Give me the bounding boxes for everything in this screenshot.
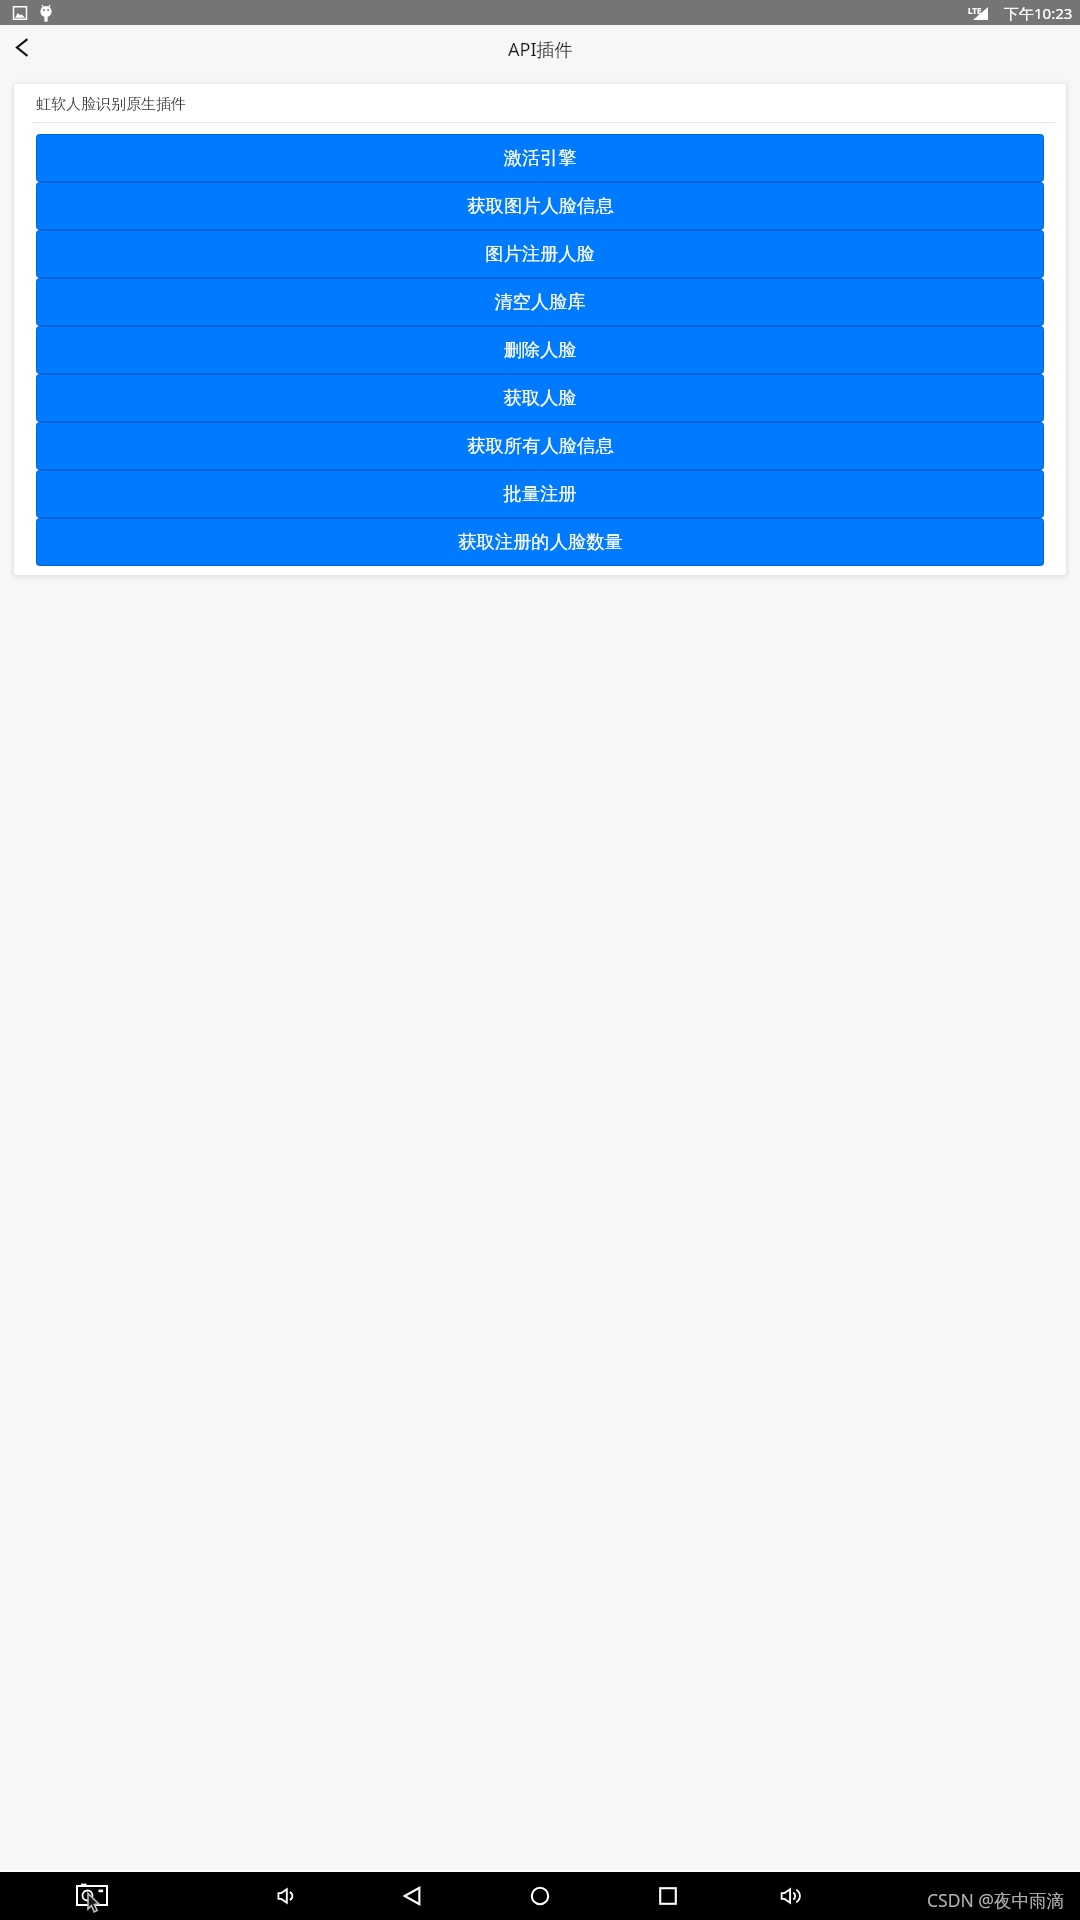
staticText: 清空人脸库 [494, 290, 586, 313]
button[interactable]: 获取人脸 [37, 375, 1043, 421]
staticText: 激活引擎 [503, 146, 577, 169]
staticText: 获取人脸 [503, 386, 577, 409]
staticText: CSDN @夜中雨滴 [927, 1888, 1065, 1912]
button[interactable]: Back [0, 25, 44, 69]
staticText: 图片注册人脸 [485, 242, 595, 265]
button[interactable]: 获取注册的人脸数量 [37, 519, 1043, 565]
button[interactable]: Back [390, 1874, 434, 1918]
staticText: 虹软人脸识别原生插件 [36, 95, 186, 114]
staticText: 下午10:23 [1004, 3, 1073, 23]
button[interactable]: 批量注册 [37, 471, 1043, 517]
button[interactable]: 获取所有人脸信息 [37, 423, 1043, 469]
staticText: LTE [968, 5, 982, 16]
button[interactable]: 获取图片人脸信息 [37, 183, 1043, 229]
staticText: 获取注册的人脸数量 [458, 530, 623, 553]
button[interactable]: 删除人脸 [37, 327, 1043, 373]
staticText: 获取图片人脸信息 [467, 194, 614, 217]
staticText: 删除人脸 [503, 338, 577, 361]
button[interactable]: Recent apps [646, 1874, 690, 1918]
button[interactable]: 清空人脸库 [37, 279, 1043, 325]
staticText: API插件 [508, 37, 573, 62]
staticText: 获取所有人脸信息 [467, 434, 614, 457]
button[interactable]: Home [518, 1874, 562, 1918]
button[interactable]: 激活引擎 [37, 135, 1043, 181]
button[interactable]: Screenshot [70, 1874, 114, 1918]
staticText: 批量注册 [503, 482, 577, 505]
button[interactable]: Volume down [266, 1874, 310, 1918]
button[interactable]: 图片注册人脸 [37, 231, 1043, 277]
button[interactable]: Volume up [770, 1874, 814, 1918]
